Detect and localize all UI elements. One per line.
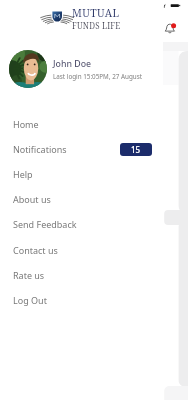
button[interactable]: Rate us xyxy=(0,262,188,287)
button[interactable]: About us xyxy=(0,186,188,211)
staticText: Contact us xyxy=(13,244,58,256)
button[interactable]: Home xyxy=(0,111,188,136)
staticText: Rate us xyxy=(13,269,45,281)
staticText: Send Feedback xyxy=(13,218,77,230)
staticText: 15 xyxy=(131,144,141,155)
staticText: Last login 15:05PM, 27 August xyxy=(53,72,142,81)
staticText: FUNDS LIFE xyxy=(72,20,121,31)
button[interactable]: Log Out xyxy=(0,287,188,312)
button[interactable]: Notifications xyxy=(164,22,176,34)
staticText: About us xyxy=(13,193,51,205)
staticText: MUTUAL xyxy=(72,6,120,20)
button[interactable]: Send Feedback xyxy=(0,211,188,236)
staticText: Log Out xyxy=(13,294,47,306)
staticText: John Doe xyxy=(53,58,92,70)
button[interactable]: Help xyxy=(0,161,188,186)
button[interactable]: Notifications xyxy=(0,136,188,161)
staticText: Notifications xyxy=(13,143,67,155)
staticText: Home xyxy=(13,118,39,130)
staticText: Help xyxy=(13,168,33,180)
button[interactable]: Contact us xyxy=(0,237,188,262)
